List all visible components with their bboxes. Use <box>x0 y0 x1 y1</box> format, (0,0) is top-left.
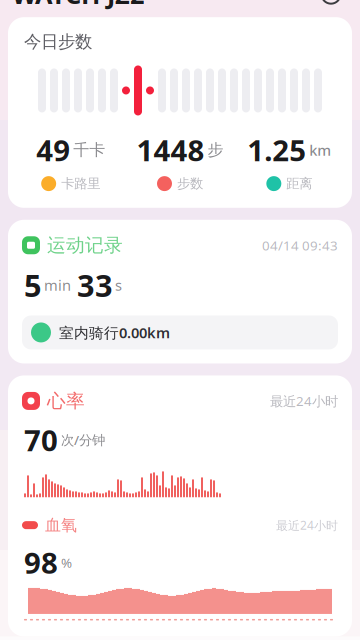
staticText: 最近24小时 <box>270 392 338 410</box>
staticText: 心率 <box>47 389 85 412</box>
staticText: 步 <box>207 140 223 160</box>
staticText: 距离 <box>286 175 312 192</box>
staticText: 次/分钟 <box>61 431 105 449</box>
staticText: 卡路里 <box>61 175 100 192</box>
staticText: 今日步数 <box>24 31 92 52</box>
button[interactable]: 运动记录 <box>8 220 352 363</box>
staticText: 室内骑行0.00km <box>59 323 170 342</box>
staticText: min <box>44 275 71 295</box>
staticText: 运动记录 <box>47 234 123 257</box>
staticText: 70 <box>24 420 58 459</box>
staticText: WATCH JZ2 <box>12 0 144 11</box>
staticText: s <box>115 275 122 295</box>
staticText: 血氧 <box>45 515 77 535</box>
staticText: 最近24小时 <box>276 517 338 533</box>
staticText: 1448 <box>136 130 204 169</box>
staticText: › <box>334 0 340 1</box>
staticText: km <box>309 140 331 160</box>
staticText: 04/14 09:43 <box>262 236 338 254</box>
staticText: 千卡 <box>73 140 105 160</box>
staticText: 1.25 <box>247 130 306 169</box>
staticText: % <box>61 554 72 571</box>
staticText: 步数 <box>177 175 203 192</box>
staticText: 49 <box>36 130 70 169</box>
staticText: 5 <box>24 265 42 305</box>
staticText: 33 <box>77 265 113 305</box>
staticText: 98 <box>24 543 58 582</box>
button[interactable]: Refresh <box>314 0 348 11</box>
